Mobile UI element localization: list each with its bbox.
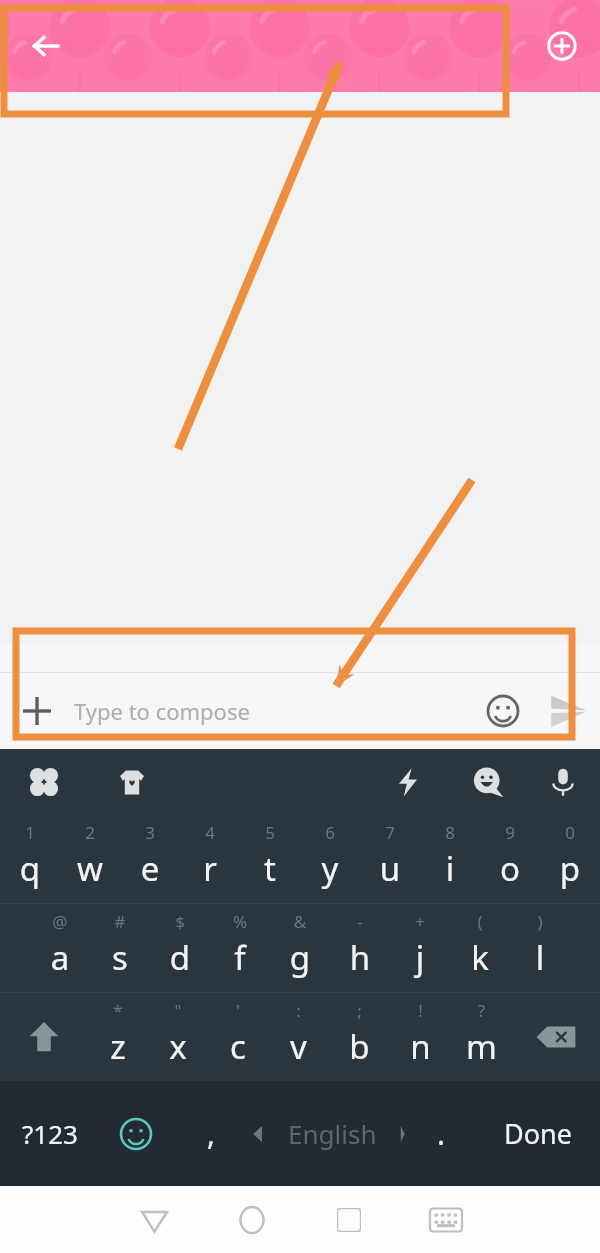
button[interactable]: +: [390, 904, 450, 992]
button[interactable]: %: [210, 904, 270, 992]
button[interactable]: 5: [240, 815, 300, 903]
staticText: c: [208, 1024, 268, 1069]
staticText: r: [180, 846, 240, 891]
button[interactable]: !: [390, 993, 451, 1081]
staticText: .: [437, 1113, 446, 1154]
button[interactable]: @: [30, 904, 90, 992]
staticText: *: [88, 999, 148, 1022]
staticText: x: [148, 1024, 208, 1069]
staticText: :: [268, 999, 329, 1022]
staticText: z: [88, 1024, 148, 1069]
button[interactable]: Send: [536, 673, 600, 749]
button[interactable]: Emoji: [470, 673, 536, 749]
staticText: Done: [504, 1115, 572, 1152]
staticText: Type to compose: [74, 696, 250, 726]
staticText: v: [268, 1024, 329, 1069]
staticText: l: [510, 935, 570, 980]
staticText: ': [208, 999, 268, 1022]
button[interactable]: &: [270, 904, 330, 992]
staticText: ;: [329, 999, 390, 1022]
staticText: 2: [60, 821, 120, 844]
staticText: h: [330, 935, 390, 980]
staticText: g: [270, 935, 330, 980]
button[interactable]: ,: [172, 1081, 250, 1186]
button[interactable]: ": [148, 993, 208, 1081]
button[interactable]: Backspace: [512, 993, 600, 1081]
staticText: e: [120, 846, 180, 891]
staticText: s: [90, 935, 150, 980]
staticText: m: [451, 1024, 512, 1069]
button[interactable]: Shift: [0, 993, 88, 1081]
button[interactable]: *: [88, 993, 148, 1081]
staticText: #: [90, 910, 150, 933]
staticText: English: [288, 1116, 377, 1151]
staticText: o: [480, 846, 540, 891]
staticText: t: [240, 846, 300, 891]
button[interactable]: 3: [120, 815, 180, 903]
button[interactable]: Hide keyboard: [397, 1186, 494, 1253]
button[interactable]: ?: [451, 993, 512, 1081]
staticText: 1: [0, 821, 60, 844]
button[interactable]: 0: [540, 815, 600, 903]
staticText: !: [390, 999, 451, 1022]
staticText: a: [30, 935, 90, 980]
button[interactable]: 8: [420, 815, 480, 903]
staticText: @: [30, 910, 90, 933]
button[interactable]: Recents: [300, 1186, 397, 1253]
button[interactable]: $: [150, 904, 210, 992]
button[interactable]: 1: [0, 815, 60, 903]
button[interactable]: Attach: [0, 673, 74, 749]
button[interactable]: Themes: [0, 749, 88, 815]
staticText: b: [329, 1024, 390, 1069]
button[interactable]: Emoji: [100, 1081, 172, 1186]
staticText: j: [390, 935, 450, 980]
staticText: q: [0, 846, 60, 891]
button[interactable]: Back: [106, 1186, 203, 1253]
button[interactable]: :: [268, 993, 329, 1081]
staticText: %: [210, 910, 270, 933]
staticText: -: [330, 910, 390, 933]
button[interactable]: Type to compose: [74, 673, 470, 749]
button[interactable]: Back: [22, 22, 70, 70]
button[interactable]: 4: [180, 815, 240, 903]
button[interactable]: 6: [300, 815, 360, 903]
staticText: 8: [420, 821, 480, 844]
staticText: ,: [207, 1113, 216, 1154]
button[interactable]: Done: [476, 1081, 600, 1186]
staticText: 7: [360, 821, 420, 844]
button[interactable]: Voice input: [526, 749, 600, 815]
staticText: 6: [300, 821, 360, 844]
staticText: f: [210, 935, 270, 980]
staticText: 5: [240, 821, 300, 844]
staticText: d: [150, 935, 210, 980]
button[interactable]: ;: [329, 993, 390, 1081]
button[interactable]: ?123: [0, 1081, 100, 1186]
button[interactable]: -: [330, 904, 390, 992]
button[interactable]: English: [250, 1081, 406, 1186]
button[interactable]: Add: [536, 20, 588, 72]
button[interactable]: Stickers: [88, 749, 176, 815]
staticText: k: [450, 935, 510, 980]
button[interactable]: ): [510, 904, 570, 992]
button[interactable]: 9: [480, 815, 540, 903]
staticText: 0: [540, 821, 600, 844]
button[interactable]: #: [90, 904, 150, 992]
button[interactable]: 7: [360, 815, 420, 903]
button[interactable]: .: [406, 1081, 476, 1186]
staticText: 9: [480, 821, 540, 844]
button[interactable]: (: [450, 904, 510, 992]
staticText: w: [60, 846, 120, 891]
button[interactable]: ': [208, 993, 268, 1081]
staticText: &: [270, 910, 330, 933]
staticText: i: [420, 846, 480, 891]
staticText: y: [300, 846, 360, 891]
staticText: (: [450, 910, 510, 933]
staticText: p: [540, 846, 600, 891]
staticText: ": [148, 999, 208, 1022]
button[interactable]: Home: [203, 1186, 300, 1253]
button[interactable]: Quick: [366, 749, 450, 815]
button[interactable]: Emoji keyboard: [450, 749, 526, 815]
button[interactable]: 2: [60, 815, 120, 903]
staticText: n: [390, 1024, 451, 1069]
staticText: u: [360, 846, 420, 891]
